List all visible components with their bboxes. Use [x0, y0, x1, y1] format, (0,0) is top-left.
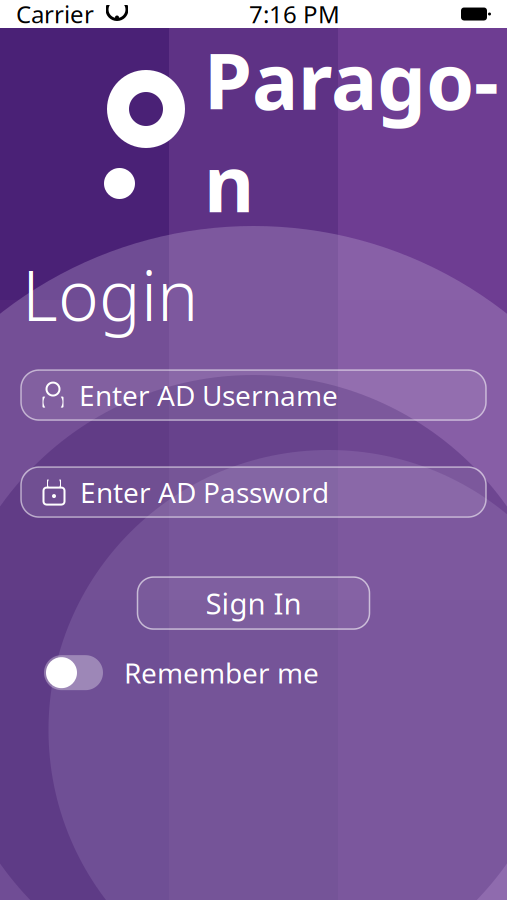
staticText: Sign In — [205, 584, 301, 623]
staticText: Remember me — [124, 654, 319, 691]
staticText: Enter AD Password — [80, 473, 329, 511]
button[interactable]: Remember me toggle — [44, 655, 103, 690]
button[interactable]: Enter AD Username — [21, 370, 486, 420]
staticText: 7:16 PM — [249, 0, 340, 30]
button[interactable]: Enter AD Password — [21, 467, 486, 517]
staticText: Login — [22, 248, 198, 340]
button[interactable]: Sign In — [137, 577, 369, 629]
button[interactable]: Remember me — [103, 654, 319, 691]
staticText: Carrier — [16, 0, 94, 30]
staticText: Enter AD Username — [79, 376, 338, 414]
staticText: Paragon — [204, 28, 499, 234]
staticText — [94, 0, 106, 30]
